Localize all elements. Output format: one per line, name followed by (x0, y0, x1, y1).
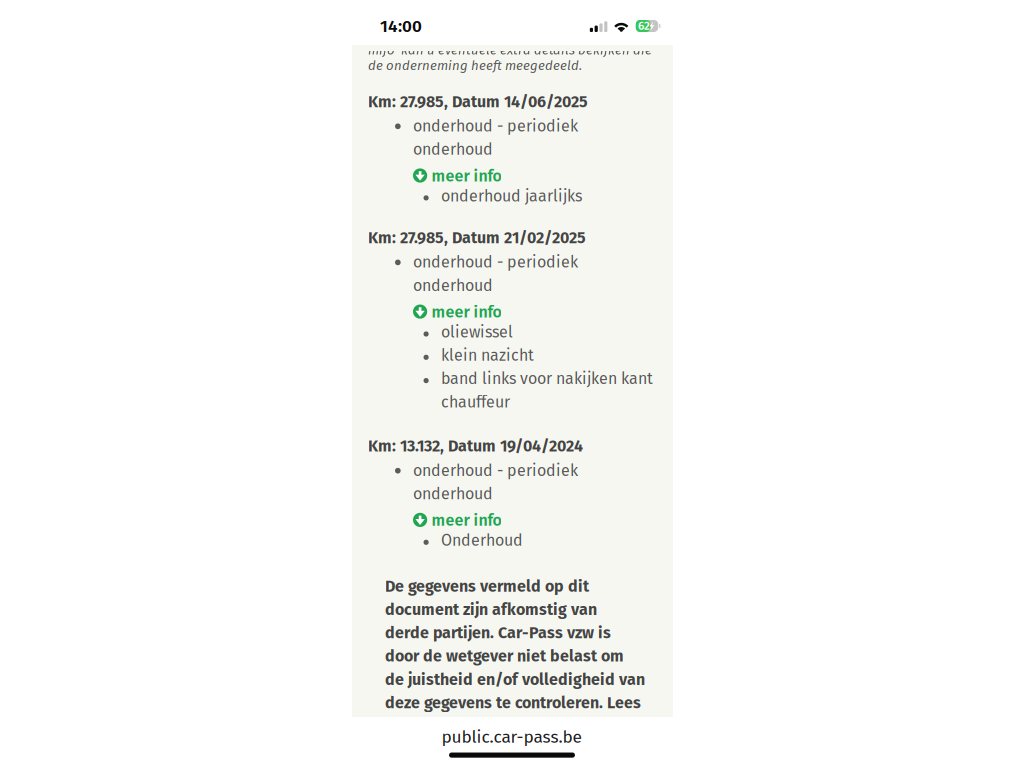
staticText: Km: 13.132, Datum 19/04/2024 (368, 437, 583, 456)
staticText: document zijn afkomstig van (385, 600, 597, 619)
staticText: meer info (431, 511, 501, 530)
staticText: meer info (431, 303, 501, 322)
staticText: Onderhoud (441, 531, 523, 550)
staticText: Km: 27.985, Datum 14/06/2025 (368, 92, 588, 111)
staticText: de juistheid en/of volledigheid van (385, 670, 645, 689)
staticText: onderhoud (413, 276, 493, 295)
staticText: 62 (638, 19, 650, 33)
staticText: door de wetgever niet belast om (385, 647, 624, 666)
staticText: chauffeur (441, 392, 510, 412)
staticText: Km: 27.985, Datum 21/02/2025 (368, 228, 586, 247)
staticText: onderhoud - periodiek (413, 116, 578, 136)
staticText: De gegevens vermeld op dit (385, 577, 589, 596)
button[interactable]: meer info (413, 513, 501, 527)
staticText: band links voor nakijken kant (441, 369, 653, 388)
staticText: de onderneming heeft meegedeeld. (368, 58, 582, 73)
staticText: onderhoud - periodiek (413, 461, 578, 480)
staticText: 14:00 (380, 16, 422, 37)
staticText: deze gegevens te controleren. Lees (385, 693, 641, 712)
button[interactable]: meer info (413, 304, 501, 319)
button[interactable]: public.car-pass.be (333, 726, 690, 748)
staticText: onderhoud - periodiek (413, 253, 578, 272)
staticText: public.car-pass.be (441, 727, 581, 747)
staticText: oliewissel (441, 322, 513, 342)
staticText: onderhoud (413, 140, 493, 159)
staticText: onderhoud (413, 484, 493, 503)
staticText: meer info (431, 166, 501, 186)
staticText: derde partijen. Car-Pass vzw is (385, 623, 611, 642)
button[interactable]: meer info (413, 168, 501, 183)
staticText: onderhoud jaarlijks (441, 186, 582, 206)
staticText: klein nazicht (441, 346, 534, 365)
staticText: mijo kan u eventuele extra details bekij… (368, 42, 652, 58)
